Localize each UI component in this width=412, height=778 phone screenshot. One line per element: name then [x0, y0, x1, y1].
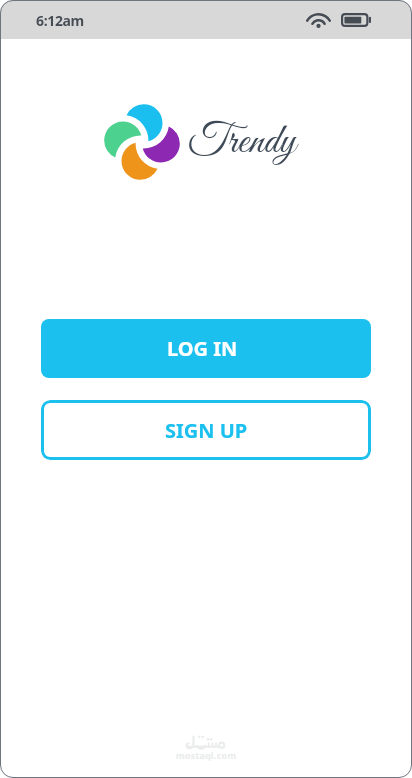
button[interactable]: SIGN UP [41, 400, 371, 460]
other: Wi-Fi signal [306, 10, 331, 27]
other: Battery level [341, 13, 371, 27]
staticText: 6:12am [36, 11, 84, 30]
button[interactable]: LOG IN [41, 319, 371, 378]
staticText: mostaql.com [176, 749, 237, 761]
staticText: SIGN UP [165, 417, 248, 444]
staticText: Trendy [188, 116, 296, 169]
staticText: LOG IN [167, 335, 238, 362]
